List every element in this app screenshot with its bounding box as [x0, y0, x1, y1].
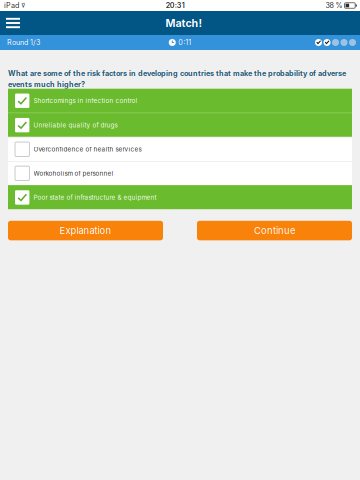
staticText: Explanation [59, 225, 111, 236]
button[interactable]: Menu [0, 11, 34, 35]
button[interactable]: Continue [197, 221, 352, 240]
staticText: Workoholism of personnel [34, 170, 114, 177]
staticText: ⊽ [19, 2, 25, 9]
staticText: What are some of the risk factors in dev… [8, 69, 346, 78]
staticText: Unreliable quality of drugs [34, 121, 118, 129]
staticText: Match! [165, 16, 202, 29]
button[interactable]: Overconfidence of health services [8, 137, 352, 161]
staticText: events much higher? [8, 80, 85, 89]
staticText: 20:31 [166, 1, 185, 10]
staticText: Overconfidence of health services [34, 145, 142, 153]
staticText: Shortcomings in infection control [34, 97, 138, 105]
button[interactable]: Unreliable quality of drugs [8, 113, 352, 137]
staticText: 0:11 [178, 38, 191, 47]
staticText: iPad [4, 1, 19, 10]
button[interactable]: Explanation [8, 221, 163, 240]
button[interactable]: Shortcomings in infection control [8, 89, 352, 113]
staticText: Continue [254, 225, 295, 236]
button[interactable]: Workoholism of personnel [8, 161, 352, 185]
staticText: 38 % [325, 1, 342, 10]
button[interactable]: Poor state of infrastructure & equipment [8, 185, 352, 209]
staticText: Poor state of infrastructure & equipment [34, 194, 157, 201]
staticText: Round 1/3 [7, 38, 40, 47]
